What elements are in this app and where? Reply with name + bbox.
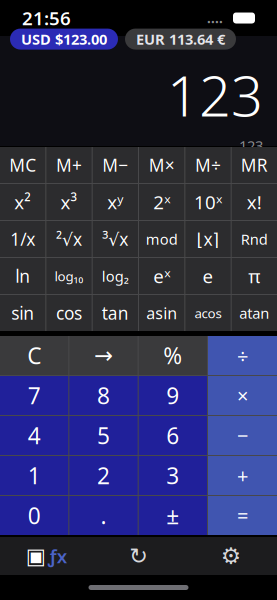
button[interactable]: atan (232, 295, 277, 331)
button[interactable]: asin (139, 295, 184, 331)
staticText: acos (194, 304, 221, 322)
button[interactable]: → (69, 336, 138, 375)
button[interactable]: x² (0, 184, 45, 220)
button[interactable]: 6 (139, 416, 207, 455)
button[interactable]: USD $123.00 (10, 29, 118, 50)
staticText: 123 (239, 136, 263, 155)
staticText: 21:56 (22, 6, 71, 30)
staticText: sin (11, 301, 34, 324)
button[interactable]: 1 (0, 456, 68, 495)
staticText: 8 (97, 380, 110, 410)
staticText: 2 (97, 460, 110, 490)
staticText: 2ˣ (153, 190, 170, 214)
button[interactable]: x³ (46, 184, 92, 220)
button[interactable]: + (208, 456, 277, 495)
button[interactable]: 3 (139, 456, 207, 495)
button[interactable]: 0 (0, 496, 68, 535)
button[interactable]: − (208, 416, 277, 455)
button[interactable]: tan (93, 295, 138, 331)
button[interactable]: M× (139, 147, 184, 183)
staticText: x! (247, 190, 262, 214)
staticText: ↻ (129, 543, 148, 569)
button[interactable]: 2ˣ (139, 184, 184, 220)
staticText: e (202, 264, 213, 288)
button[interactable]: ²√x (46, 221, 92, 257)
button[interactable]: Settings (185, 537, 277, 575)
staticText: 123 (167, 58, 263, 132)
staticText: x³ (60, 190, 77, 214)
staticText: MC (9, 153, 36, 176)
staticText: − (237, 422, 248, 449)
button[interactable]: 10ˣ (185, 184, 231, 220)
button[interactable]: MC (0, 147, 45, 183)
staticText: 0 (28, 500, 41, 530)
staticText: 6 (166, 420, 179, 450)
button[interactable]: C (0, 336, 68, 375)
button[interactable]: x! (232, 184, 277, 220)
button[interactable]: 4 (0, 416, 68, 455)
button[interactable]: log₂ (93, 258, 138, 294)
button[interactable]: e (185, 258, 231, 294)
staticText: cos (56, 301, 82, 324)
button[interactable]: 2 (69, 456, 138, 495)
staticText: tan (102, 301, 129, 324)
staticText: xʸ (107, 190, 123, 214)
button[interactable]: = (208, 496, 277, 535)
button[interactable]: EUR 113.64 € (125, 29, 236, 50)
button[interactable]: . (69, 496, 138, 535)
staticText: ▣ (26, 544, 46, 568)
staticText: log₁₀ (54, 267, 83, 285)
staticText: x² (14, 190, 31, 214)
button[interactable]: xʸ (93, 184, 138, 220)
staticText: M÷ (195, 153, 221, 176)
button[interactable]: sin (0, 295, 45, 331)
staticText: 5 (97, 420, 110, 450)
button[interactable]: M+ (46, 147, 92, 183)
button[interactable]: Rnd (232, 221, 277, 257)
staticText: 9 (166, 380, 179, 410)
button[interactable]: 8 (69, 376, 138, 415)
staticText: Rnd (241, 229, 268, 249)
staticText: ⚙ (221, 543, 241, 569)
staticText: . (100, 500, 106, 530)
button[interactable]: MR (232, 147, 277, 183)
staticText: M+ (56, 153, 82, 176)
staticText: ƒx (48, 544, 67, 568)
staticText: 4 (28, 420, 41, 450)
button[interactable]: ± (139, 496, 207, 535)
button[interactable]: cos (46, 295, 92, 331)
button[interactable]: % (139, 336, 207, 375)
button[interactable]: 1/x (0, 221, 45, 257)
button[interactable]: ln (0, 258, 45, 294)
staticText: × (237, 382, 248, 409)
button[interactable]: 7 (0, 376, 68, 415)
staticText: asin (146, 302, 177, 324)
staticText: = (237, 502, 248, 529)
staticText: M× (149, 153, 175, 176)
staticText: % (163, 340, 182, 370)
staticText: C (27, 340, 41, 370)
staticText: π (248, 264, 260, 288)
staticText: .... (207, 9, 223, 27)
button[interactable]: log₁₀ (46, 258, 92, 294)
button[interactable]: Currency rates (92, 537, 185, 575)
button[interactable]: × (208, 376, 277, 415)
button[interactable]: ÷ (208, 336, 277, 375)
staticText: USD $123.00 (21, 29, 107, 49)
button[interactable]: M÷ (185, 147, 231, 183)
staticText: M− (102, 153, 128, 176)
button[interactable]: mod (139, 221, 184, 257)
button[interactable]: ⌊x⌉ (185, 221, 231, 257)
staticText: 10ˣ (194, 190, 222, 214)
button[interactable]: 5 (69, 416, 138, 455)
button[interactable]: acos (185, 295, 231, 331)
button[interactable]: Calculator (0, 537, 92, 575)
staticText: log₂ (102, 266, 129, 286)
staticText: EUR 113.64 € (136, 29, 225, 49)
button[interactable]: π (232, 258, 277, 294)
staticText: 1 (28, 460, 41, 490)
button[interactable]: 9 (139, 376, 207, 415)
button[interactable]: M− (93, 147, 138, 183)
button[interactable]: ³√x (93, 221, 138, 257)
button[interactable]: eˣ (139, 258, 184, 294)
